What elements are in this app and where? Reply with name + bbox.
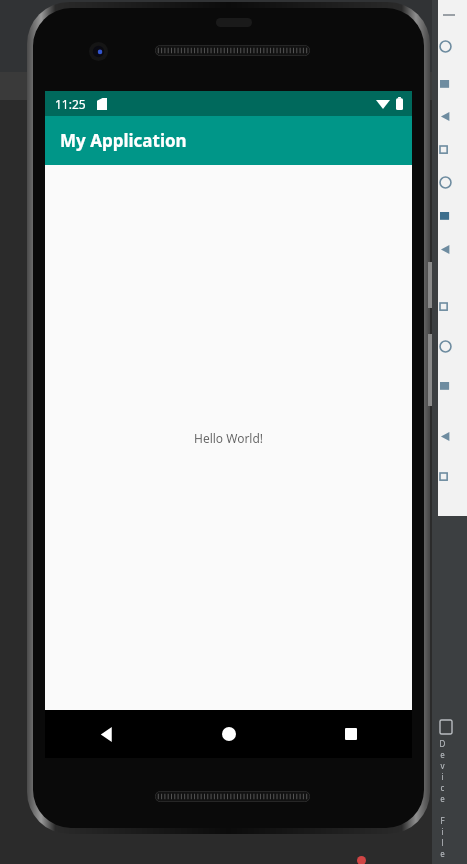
staticText: D (437, 738, 448, 749)
staticText: My Application (60, 129, 187, 152)
staticText: Hello World! (194, 430, 264, 446)
staticText: e (437, 749, 448, 760)
staticText: l (437, 837, 448, 848)
button[interactable]: Recent apps (290, 710, 412, 758)
staticText: e (437, 848, 448, 859)
staticText: F (437, 815, 448, 826)
staticText: e (437, 793, 448, 804)
staticText: c (437, 782, 448, 793)
button[interactable]: Home (168, 710, 290, 758)
staticText: 11:25 (55, 96, 86, 112)
staticText: i (437, 826, 448, 837)
button[interactable]: Device File Explorer (432, 516, 467, 864)
staticText: v (437, 760, 448, 771)
button[interactable]: Back (45, 710, 168, 758)
staticText: i (437, 771, 448, 782)
